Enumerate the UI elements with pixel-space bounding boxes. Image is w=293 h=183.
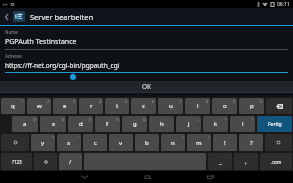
staticText: Server bearbeiten xyxy=(30,12,94,22)
button[interactable]: Fertig xyxy=(257,116,292,132)
staticText: 0 xyxy=(260,99,263,104)
staticText: ' xyxy=(256,154,257,159)
staticText: " xyxy=(78,135,80,140)
button[interactable]: , xyxy=(234,153,258,170)
staticText: , xyxy=(235,135,236,140)
button[interactable]: _ xyxy=(208,153,232,170)
button[interactable]: u xyxy=(158,98,183,114)
staticText: g xyxy=(133,120,137,128)
staticText: y xyxy=(41,139,45,147)
staticText: a xyxy=(23,120,27,128)
button[interactable]: Adresse xyxy=(5,53,288,73)
button[interactable]: p xyxy=(239,98,264,114)
staticText: PGPAuth Testinstance xyxy=(5,37,77,47)
button[interactable]: q xyxy=(1,98,25,114)
staticText: @ xyxy=(33,117,37,122)
staticText: 7 xyxy=(179,99,182,104)
button[interactable]: Home xyxy=(139,171,155,183)
staticText: 9 xyxy=(233,99,236,104)
staticText: ( xyxy=(225,117,227,122)
button[interactable]: Keyboard settings xyxy=(34,153,57,170)
button[interactable]: j xyxy=(176,116,201,132)
staticText: Adresse xyxy=(5,53,22,59)
button[interactable]: c xyxy=(83,134,107,151)
staticText: ! xyxy=(183,135,184,140)
button[interactable]: e xyxy=(53,98,77,114)
staticText: .com xyxy=(271,159,282,165)
button[interactable]: .com xyxy=(260,153,292,170)
staticText: _ xyxy=(219,158,222,166)
staticText: OK xyxy=(142,82,152,91)
button[interactable]: w xyxy=(27,98,51,114)
button[interactable]: o xyxy=(212,98,237,114)
staticText: x xyxy=(67,139,71,147)
button[interactable]: a xyxy=(12,116,38,132)
button[interactable]: Shift xyxy=(265,134,292,151)
button[interactable]: i xyxy=(185,98,210,114)
staticText: h xyxy=(160,120,164,128)
staticText: w xyxy=(37,102,42,110)
staticText: s xyxy=(52,120,55,128)
staticText: ? xyxy=(208,135,210,140)
button[interactable]: h xyxy=(149,116,174,132)
staticText: % xyxy=(116,117,119,122)
staticText: 3 xyxy=(73,99,76,104)
staticText: n xyxy=(171,139,175,147)
staticText: ' xyxy=(105,135,106,140)
button[interactable]: Recent apps xyxy=(202,171,218,183)
staticText: 6 xyxy=(152,99,155,104)
button[interactable]: z xyxy=(131,98,156,114)
staticText: 5 xyxy=(125,99,128,104)
button[interactable]: t xyxy=(105,98,129,114)
button[interactable]: n xyxy=(161,134,185,151)
button[interactable]: ?123 xyxy=(1,153,32,170)
button[interactable]: Name xyxy=(5,29,288,50)
button[interactable]: Shift xyxy=(1,134,29,151)
staticText: t xyxy=(116,102,119,110)
button[interactable]: y xyxy=(31,134,55,151)
button[interactable]: k xyxy=(203,116,228,132)
staticText: f xyxy=(106,120,109,128)
staticText: 4 xyxy=(99,99,102,104)
button[interactable]: x xyxy=(57,134,81,151)
staticText: + xyxy=(197,117,200,122)
button[interactable]: r xyxy=(79,98,103,114)
staticText: ) xyxy=(252,117,254,122)
button[interactable]: l xyxy=(230,116,255,132)
button[interactable]: ! xyxy=(213,134,237,151)
staticText: p xyxy=(250,102,254,110)
staticText: : xyxy=(80,154,81,159)
staticText: u xyxy=(169,102,173,110)
button[interactable]: ? xyxy=(239,134,263,151)
button[interactable]: d xyxy=(68,116,93,132)
button[interactable]: v xyxy=(109,134,133,151)
staticText: - xyxy=(171,117,173,122)
button[interactable]: OK xyxy=(0,81,293,92)
button[interactable]: Back xyxy=(0,8,293,25)
button[interactable]: / xyxy=(59,153,82,170)
button[interactable]: s xyxy=(40,116,66,132)
button[interactable]: Backspace xyxy=(266,98,292,114)
staticText: q xyxy=(11,102,15,110)
staticText: & xyxy=(143,117,146,122)
button[interactable]: Back xyxy=(76,171,92,183)
button[interactable]: m xyxy=(187,134,211,151)
staticText: Name xyxy=(5,29,18,35)
staticText: ; xyxy=(157,135,158,140)
staticText: . xyxy=(261,135,262,140)
button[interactable]: f xyxy=(95,116,120,132)
button[interactable]: b xyxy=(135,134,159,151)
staticText: k xyxy=(214,120,218,128)
staticText: ! xyxy=(224,139,226,147)
staticText: Fertig xyxy=(268,121,282,128)
staticText: 1 xyxy=(21,99,24,104)
button[interactable]: Back xyxy=(3,10,11,24)
staticText: : xyxy=(131,135,132,140)
button[interactable]: g xyxy=(122,116,147,132)
staticText: 06:11 xyxy=(277,1,290,8)
staticText: https://ff-net.org/cgi-bin/pgpauth_cgi xyxy=(5,61,120,70)
staticText: ? xyxy=(250,139,253,147)
staticText: , xyxy=(245,158,247,166)
staticText: z xyxy=(142,102,145,110)
